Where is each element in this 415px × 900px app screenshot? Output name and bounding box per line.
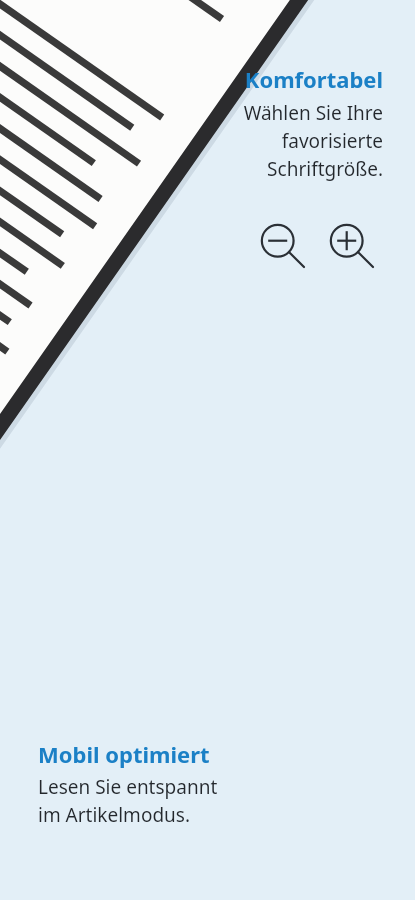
staticText: Lesen Sie entspannt im Artikelmodus. (38, 774, 355, 828)
staticText: Mobil optimiert (38, 739, 355, 769)
staticText: Wählen Sie Ihre favorisierte Schriftgröß… (110, 100, 383, 182)
staticText: Komfortabel (110, 64, 383, 94)
button[interactable]: Mobil optimiert (38, 739, 355, 828)
button[interactable]: Schrift verkleinern (260, 223, 306, 269)
button[interactable]: Komfortabel (110, 64, 383, 182)
button[interactable]: Schrift vergrößern (329, 223, 375, 269)
